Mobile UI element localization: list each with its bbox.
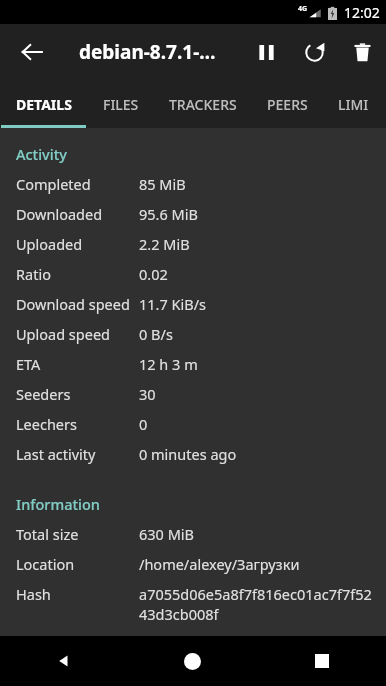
staticText: FILES bbox=[103, 95, 139, 114]
staticText: 0 minutes ago bbox=[139, 444, 374, 464]
staticText: 12:02 bbox=[344, 3, 380, 22]
staticText: TRACKERS bbox=[169, 95, 237, 114]
staticText: Ratio bbox=[16, 264, 139, 284]
staticText: Downloaded bbox=[16, 204, 139, 224]
staticText: Seeders bbox=[16, 384, 139, 404]
staticText: PEERS bbox=[267, 95, 308, 114]
staticText: Leechers bbox=[16, 414, 139, 434]
button[interactable]: PEERS bbox=[252, 80, 323, 128]
staticText: Upload speed bbox=[16, 324, 139, 344]
staticText: Completed bbox=[16, 174, 139, 194]
staticText: debian-8.7.1-… bbox=[79, 39, 229, 65]
staticText: Last activity bbox=[16, 444, 139, 464]
staticText: 95.6 MiB bbox=[139, 204, 374, 224]
staticText: 11.7 KiB/s bbox=[139, 294, 374, 314]
staticText: Location bbox=[16, 554, 139, 574]
staticText: 30 bbox=[139, 384, 374, 404]
staticText: a7055d06e5a8f7f816ec01ac7f7f5243d3cb008f bbox=[139, 584, 374, 624]
staticText: 630 MiB bbox=[139, 524, 374, 544]
staticText: 0 bbox=[139, 414, 374, 434]
staticText: LIMITS bbox=[338, 95, 371, 114]
button[interactable]: FILES bbox=[88, 80, 154, 128]
button[interactable]: Delete bbox=[338, 28, 386, 76]
staticText: DETAILS bbox=[16, 95, 72, 114]
staticText: 85 MiB bbox=[139, 174, 374, 194]
button[interactable]: Back bbox=[0, 636, 128, 686]
button[interactable]: TRACKERS bbox=[154, 80, 252, 128]
staticText: 12 h 3 m bbox=[139, 354, 374, 374]
staticText: 0.02 bbox=[139, 264, 374, 284]
staticText: ETA bbox=[16, 354, 139, 374]
button[interactable]: Pause bbox=[242, 28, 290, 76]
staticText: 0 B/s bbox=[139, 324, 374, 344]
staticText: Hash bbox=[16, 584, 139, 604]
staticText: Information bbox=[16, 494, 100, 514]
staticText: /home/alexey/Загрузки bbox=[139, 554, 374, 574]
button[interactable]: Recents bbox=[257, 636, 386, 686]
button[interactable]: Home bbox=[128, 636, 257, 686]
staticText: 4G bbox=[298, 4, 308, 14]
staticText: Total size bbox=[16, 524, 139, 544]
button[interactable]: Back bbox=[8, 28, 56, 76]
staticText: Activity bbox=[16, 144, 67, 164]
staticText: Download speed bbox=[16, 294, 139, 314]
staticText: 2.2 MiB bbox=[139, 234, 374, 254]
button[interactable]: DETAILS bbox=[0, 80, 88, 128]
button[interactable]: Refresh bbox=[290, 28, 338, 76]
staticText: Uploaded bbox=[16, 234, 139, 254]
button[interactable]: LIMITS bbox=[323, 80, 386, 128]
